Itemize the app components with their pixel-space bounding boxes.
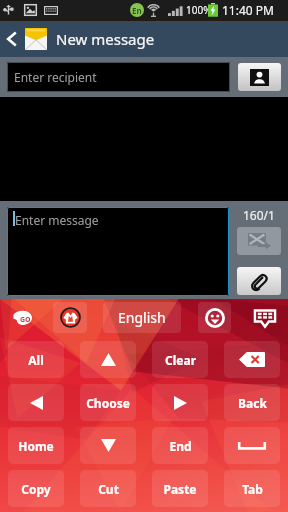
staticText: En <box>132 5 142 16</box>
button[interactable]: End <box>152 427 208 464</box>
staticText: English <box>118 308 166 327</box>
button[interactable]: Choose <box>80 384 136 421</box>
staticText: Cut <box>98 481 119 497</box>
staticText: All <box>28 352 44 368</box>
button[interactable]: Down <box>80 427 136 464</box>
staticText: End <box>169 438 192 454</box>
button[interactable]: Clear <box>152 341 208 378</box>
button[interactable]: All <box>8 341 64 378</box>
button[interactable]: Keyboard <box>248 303 281 333</box>
staticText: New message <box>56 29 155 49</box>
button[interactable]: Pick contact <box>238 63 281 91</box>
other: Left <box>30 396 43 410</box>
button[interactable]: Home <box>8 427 64 464</box>
button[interactable]: Tab <box>224 470 280 507</box>
staticText: Enter message <box>15 212 99 228</box>
staticText: Choose <box>86 395 130 411</box>
staticText: Copy <box>21 481 51 497</box>
button[interactable]: Enter message <box>7 207 229 296</box>
button[interactable]: Left <box>8 384 64 421</box>
staticText: Paste <box>163 481 197 497</box>
staticText: Clear <box>165 352 196 368</box>
staticText: Enter recipient <box>14 69 97 85</box>
button[interactable]: GO Keyboard <box>8 304 38 328</box>
button[interactable]: Enter recipient <box>7 62 230 92</box>
button[interactable]: Delete <box>224 341 280 378</box>
button[interactable]: Copy <box>8 470 64 507</box>
staticText: Back <box>238 395 267 411</box>
staticText: 160/1 <box>243 207 275 223</box>
button[interactable]: Emoji <box>198 302 231 333</box>
button[interactable]: Attach file <box>237 267 281 295</box>
other: Right <box>174 396 187 410</box>
button[interactable]: Space <box>224 427 280 464</box>
button[interactable]: Send message <box>237 227 281 255</box>
button[interactable]: Cut <box>80 470 136 507</box>
button[interactable]: Right <box>152 384 208 421</box>
button[interactable]: Back <box>224 384 280 421</box>
staticText: GO <box>20 315 31 325</box>
staticText: 11:40 PM <box>222 2 274 18</box>
button[interactable]: English <box>103 302 181 333</box>
other: Delete <box>239 352 265 367</box>
button[interactable]: Up <box>80 341 136 378</box>
staticText: Home <box>18 438 54 454</box>
button[interactable]: Back <box>0 21 24 57</box>
staticText: Tab <box>242 481 263 497</box>
other: Down <box>101 439 116 452</box>
staticText: 100% <box>186 3 212 17</box>
button[interactable]: Paste <box>152 470 208 507</box>
other: Up <box>101 353 116 366</box>
other: Space <box>238 441 266 450</box>
button[interactable]: Themes <box>53 302 87 333</box>
